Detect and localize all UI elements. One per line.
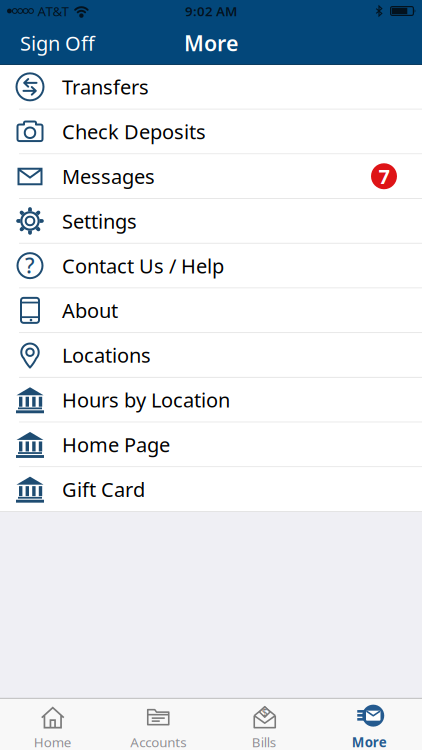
staticText: Settings	[62, 208, 137, 234]
button[interactable]: Home Page	[0, 423, 422, 467]
staticText: 9:02 AM	[185, 2, 237, 20]
staticText: Accounts	[130, 733, 186, 750]
button[interactable]: $	[211, 699, 316, 750]
staticText: Gift Card	[62, 476, 145, 502]
staticText: AT&T	[37, 2, 68, 20]
staticText: 7	[378, 163, 389, 190]
button[interactable]: Check Deposits	[0, 110, 422, 154]
button[interactable]: Hours by Location	[0, 378, 422, 423]
button[interactable]: Transfers	[0, 65, 422, 110]
staticText: Contact Us / Help	[62, 252, 224, 279]
button[interactable]: Locations	[0, 333, 422, 378]
staticText: Home Page	[62, 431, 170, 458]
button[interactable]: More	[316, 699, 422, 750]
staticText: ?	[25, 251, 35, 279]
staticText: Home	[34, 733, 72, 750]
staticText: Messages	[62, 163, 155, 190]
button[interactable]: Messages	[0, 154, 422, 199]
staticText: More	[184, 29, 238, 57]
staticText: About	[62, 297, 118, 324]
staticText: Locations	[62, 342, 151, 368]
staticText: $	[262, 705, 268, 719]
button[interactable]: Gift Card	[0, 467, 422, 512]
button[interactable]: Sign Off	[0, 30, 95, 56]
button[interactable]: ?	[0, 244, 422, 288]
button[interactable]: About	[0, 288, 422, 333]
button[interactable]: Accounts	[105, 699, 211, 750]
staticText: Hours by Location	[62, 386, 230, 413]
staticText: Sign Off	[20, 30, 95, 56]
button[interactable]: Home	[0, 699, 105, 750]
staticText: Check Deposits	[62, 118, 206, 145]
button[interactable]: Settings	[0, 199, 422, 244]
staticText: More	[352, 733, 387, 750]
staticText: Transfers	[62, 74, 149, 100]
staticText: Bills	[252, 733, 276, 750]
